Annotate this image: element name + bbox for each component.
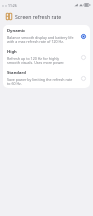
staticText: 11:26 [8,3,17,8]
staticText: Save power by limiting the refresh rate … [7,77,73,86]
staticText: Standard [7,70,26,76]
button[interactable]: High [3,46,90,67]
button[interactable]: Standard [3,67,90,88]
button[interactable]: Screen refresh rate icon [4,12,13,21]
staticText: Balance smooth display and battery life … [7,35,74,44]
staticText: High [7,49,17,55]
staticText: Dynamic [7,28,26,34]
staticText: Refresh up to 120 Hz for highly smooth v… [7,56,65,65]
staticText: Screen refresh rate [15,13,62,20]
button[interactable]: Dynamic [3,25,90,46]
